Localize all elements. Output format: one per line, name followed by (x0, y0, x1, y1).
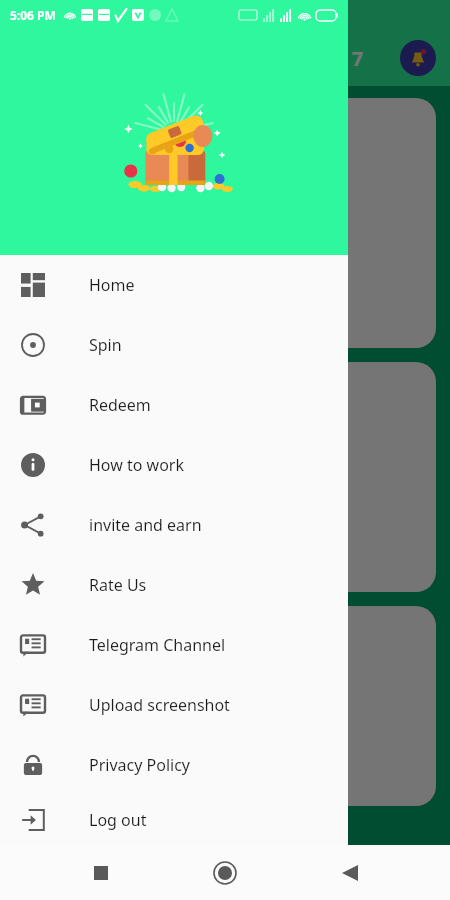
staticText: Log out (89, 809, 147, 831)
button[interactable]: Home (201, 849, 249, 897)
button[interactable]: Spin (0, 315, 348, 375)
button[interactable]: Redeem (0, 375, 348, 435)
staticText: Spin (89, 334, 122, 356)
button[interactable]: Privacy Policy (0, 735, 348, 795)
button[interactable]: Daily Quiz (14, 98, 436, 348)
button[interactable]: Log out (0, 795, 348, 845)
staticText: Daily Quiz (175, 116, 275, 143)
staticText: invite and earn (89, 514, 202, 536)
button[interactable]: Rate Us (0, 555, 348, 615)
staticText: Rate Us (89, 574, 147, 596)
staticText: Privacy Policy (89, 754, 190, 776)
button[interactable]: Back (326, 849, 374, 897)
button[interactable]: Telegram Channel (0, 615, 348, 675)
button[interactable]: invite and earn (0, 495, 348, 555)
staticText: 7 (352, 45, 364, 72)
staticText: Home (89, 274, 135, 296)
button[interactable]: Upload screenshot (0, 675, 348, 735)
staticText: 5:06 PM (10, 7, 56, 23)
button[interactable]: Spin & Earn (14, 362, 436, 592)
staticText: How to work (89, 454, 184, 476)
staticText: Redeem (89, 394, 151, 416)
button[interactable]: Home (0, 255, 348, 315)
staticText: Telegram Channel (89, 634, 226, 656)
staticText: Upload screenshot (89, 694, 230, 716)
button[interactable]: Recent apps (77, 849, 125, 897)
button[interactable]: Notifications (400, 40, 436, 76)
staticText: About Us (179, 624, 271, 651)
button[interactable]: How to work (0, 435, 348, 495)
button[interactable]: About Us (14, 606, 436, 806)
